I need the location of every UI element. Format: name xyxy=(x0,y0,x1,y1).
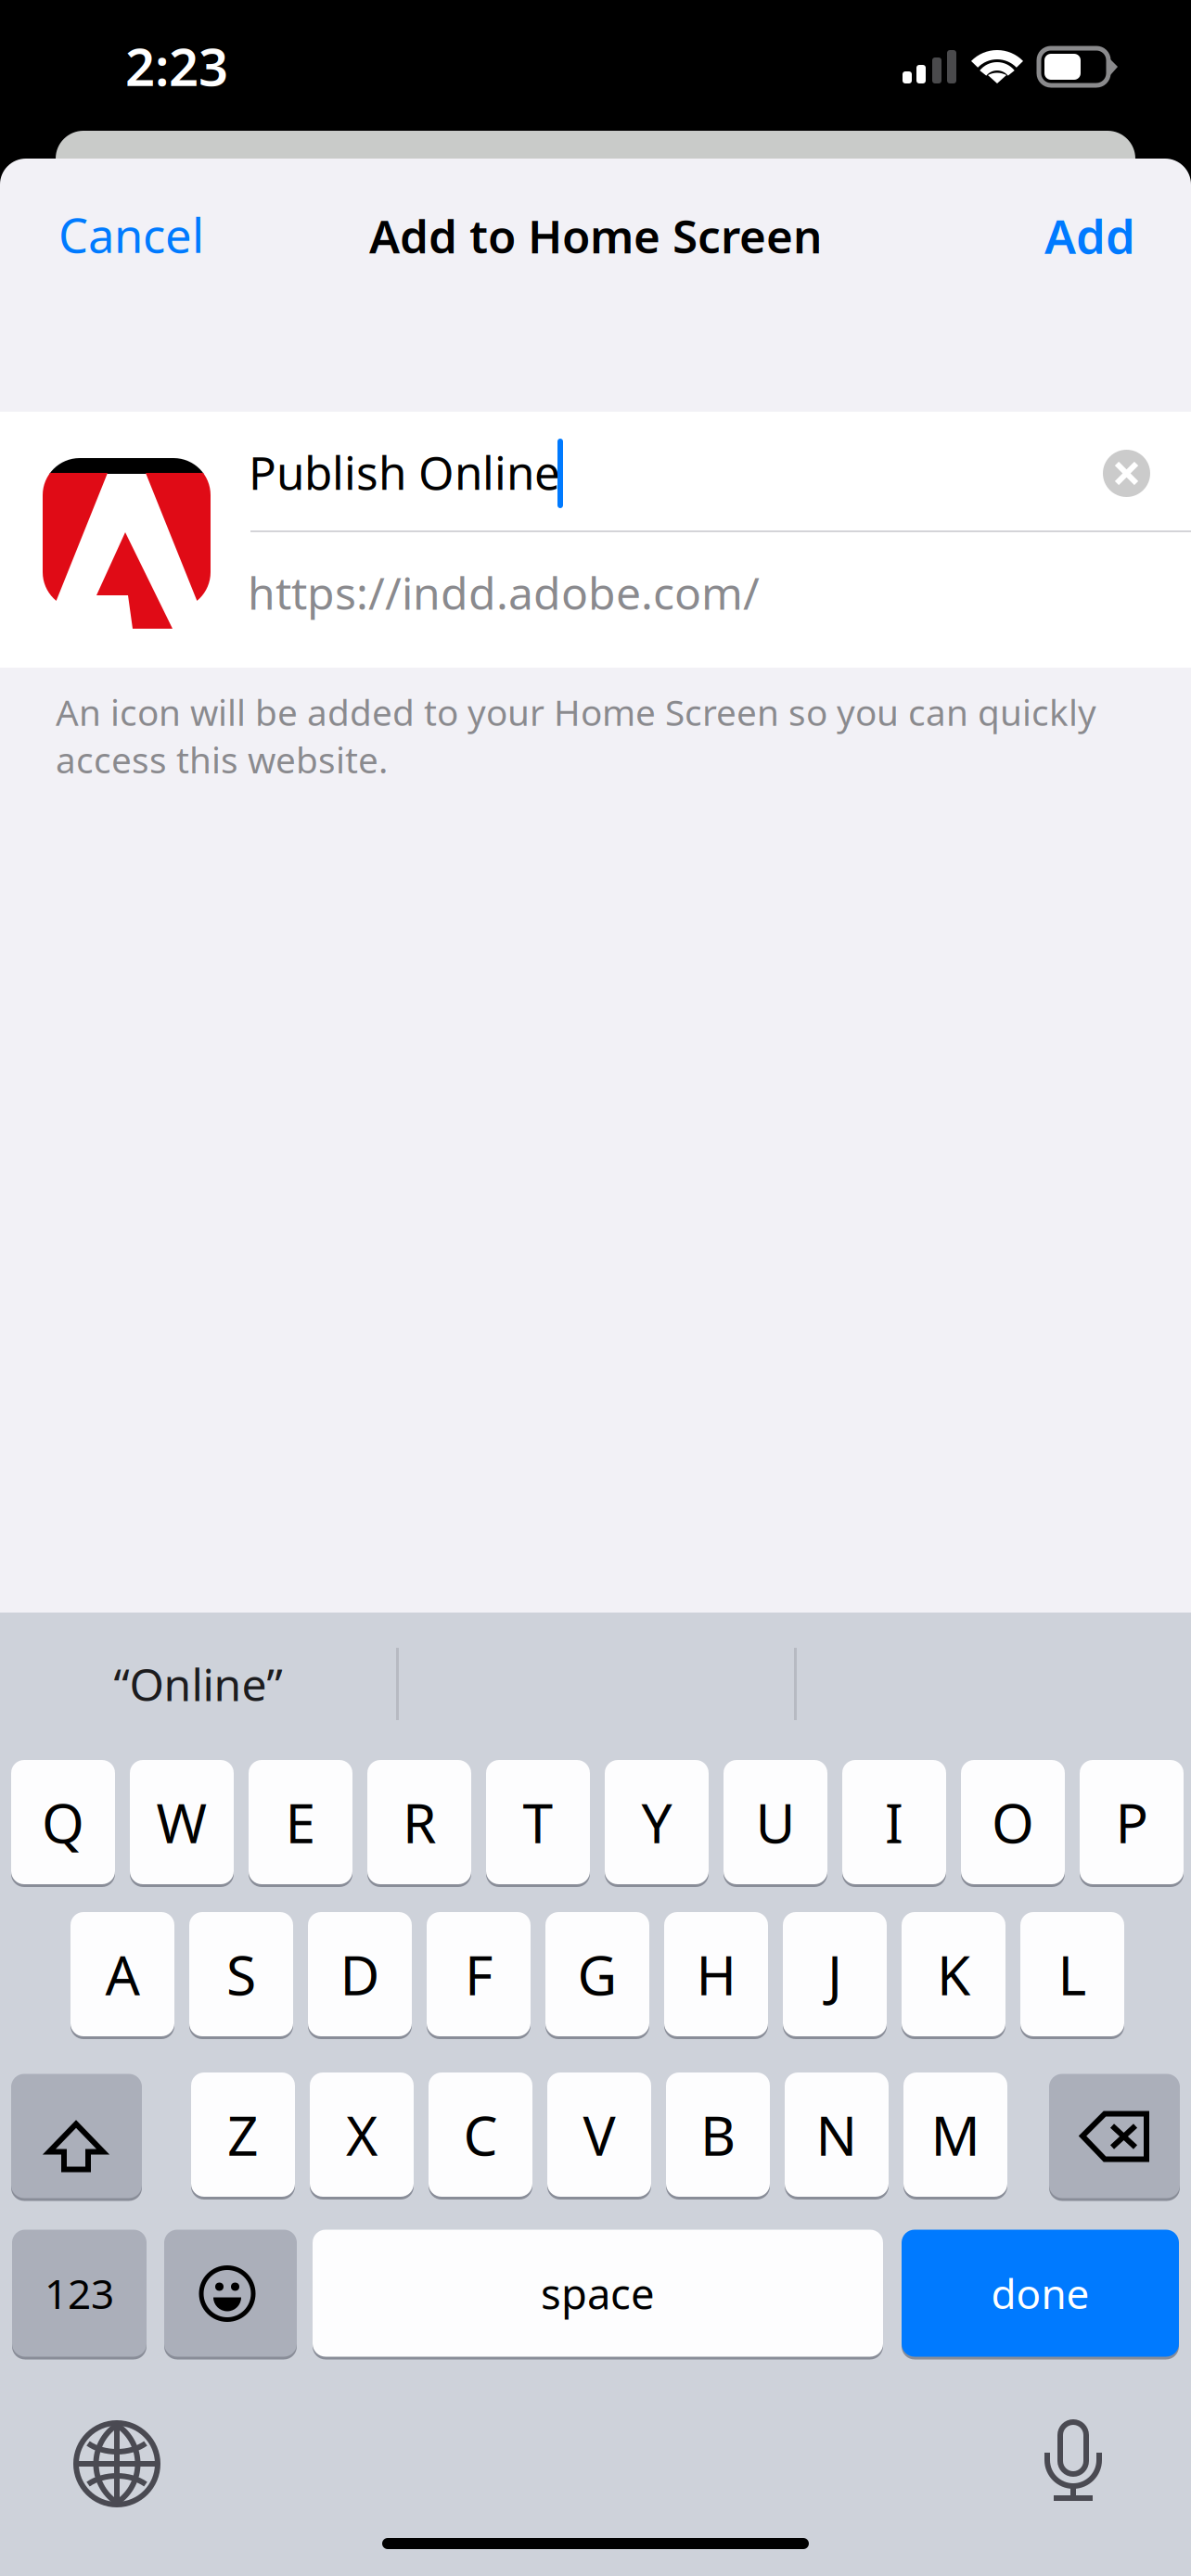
button[interactable]: 123 xyxy=(12,2230,147,2359)
staticText: space xyxy=(541,2265,655,2321)
button[interactable]: M xyxy=(903,2072,1007,2200)
button[interactable]: L xyxy=(1020,1912,1124,2039)
button[interactable]: R xyxy=(367,1760,471,1887)
staticText: Add xyxy=(1044,204,1135,267)
staticText: A xyxy=(105,1938,140,2010)
staticText: Cancel xyxy=(58,203,204,266)
staticText: Y xyxy=(641,1786,672,1858)
button[interactable]: K xyxy=(902,1912,1005,2039)
staticText: L xyxy=(1058,1938,1087,2010)
button[interactable]: H xyxy=(664,1912,768,2039)
button[interactable]: V xyxy=(547,2072,651,2200)
staticText: I xyxy=(885,1786,903,1858)
button[interactable]: Emoji xyxy=(164,2230,297,2359)
button[interactable]: O xyxy=(961,1760,1065,1887)
staticText: P xyxy=(1115,1786,1148,1858)
staticText: C xyxy=(463,2098,498,2171)
staticText: B xyxy=(700,2098,736,2171)
button[interactable]: Cancel xyxy=(19,188,278,281)
staticText: F xyxy=(465,1938,493,2010)
staticText: 2:23 xyxy=(125,31,228,100)
button[interactable]: done xyxy=(902,2230,1179,2359)
button[interactable]: J xyxy=(783,1912,887,2039)
staticText: https://indd.adobe.com/ xyxy=(248,563,760,622)
staticText: W xyxy=(156,1786,207,1858)
staticText: Z xyxy=(227,2098,259,2171)
button[interactable]: N xyxy=(785,2072,889,2200)
staticText: G xyxy=(577,1938,617,2010)
button[interactable]: E xyxy=(249,1760,352,1887)
staticText: 123 xyxy=(45,2266,114,2320)
staticText: X xyxy=(346,2098,378,2171)
button[interactable]: A xyxy=(70,1912,174,2039)
staticText: O xyxy=(992,1786,1034,1858)
button[interactable]: Q xyxy=(11,1760,115,1887)
staticText: S xyxy=(226,1938,256,2010)
staticText: E xyxy=(285,1786,316,1858)
button[interactable]: U xyxy=(724,1760,827,1887)
button[interactable]: space xyxy=(313,2230,883,2359)
button[interactable]: Clear text xyxy=(1082,429,1171,518)
button[interactable]: B xyxy=(666,2072,770,2200)
staticText: V xyxy=(583,2098,615,2171)
button[interactable]: I xyxy=(842,1760,946,1887)
button[interactable]: S xyxy=(189,1912,293,2039)
button[interactable]: D xyxy=(308,1912,412,2039)
staticText: N xyxy=(816,2098,858,2171)
staticText: done xyxy=(991,2266,1089,2320)
button[interactable]: W xyxy=(130,1760,234,1887)
staticText: “Online” xyxy=(114,1654,282,1713)
staticText: D xyxy=(340,1938,380,2010)
button[interactable]: P xyxy=(1080,1760,1184,1887)
button[interactable]: G xyxy=(545,1912,649,2039)
button[interactable]: Y xyxy=(605,1760,709,1887)
staticText: Add to Home Screen xyxy=(369,205,822,266)
button[interactable]: F xyxy=(427,1912,531,2039)
staticText: K xyxy=(937,1938,970,2010)
staticText: H xyxy=(696,1938,736,2010)
button[interactable]: X xyxy=(310,2072,414,2200)
staticText: M xyxy=(931,2098,980,2171)
button[interactable]: Z xyxy=(191,2072,295,2200)
staticText: Publish Online xyxy=(249,442,560,502)
staticText: An icon will be added to your Home Scree… xyxy=(56,688,1096,783)
button[interactable]: Next keyboard xyxy=(76,2423,158,2505)
button[interactable]: Shift xyxy=(11,2074,142,2201)
staticText: R xyxy=(403,1786,436,1858)
button[interactable]: Dictate xyxy=(1044,2418,1102,2502)
staticText: T xyxy=(523,1786,553,1858)
button[interactable]: Delete xyxy=(1049,2074,1180,2201)
button[interactable]: Add xyxy=(913,189,1169,282)
button[interactable]: T xyxy=(486,1760,590,1887)
staticText: J xyxy=(827,1938,842,2010)
staticText: Q xyxy=(42,1786,84,1858)
staticText: U xyxy=(756,1786,795,1858)
button[interactable]: C xyxy=(429,2072,532,2200)
